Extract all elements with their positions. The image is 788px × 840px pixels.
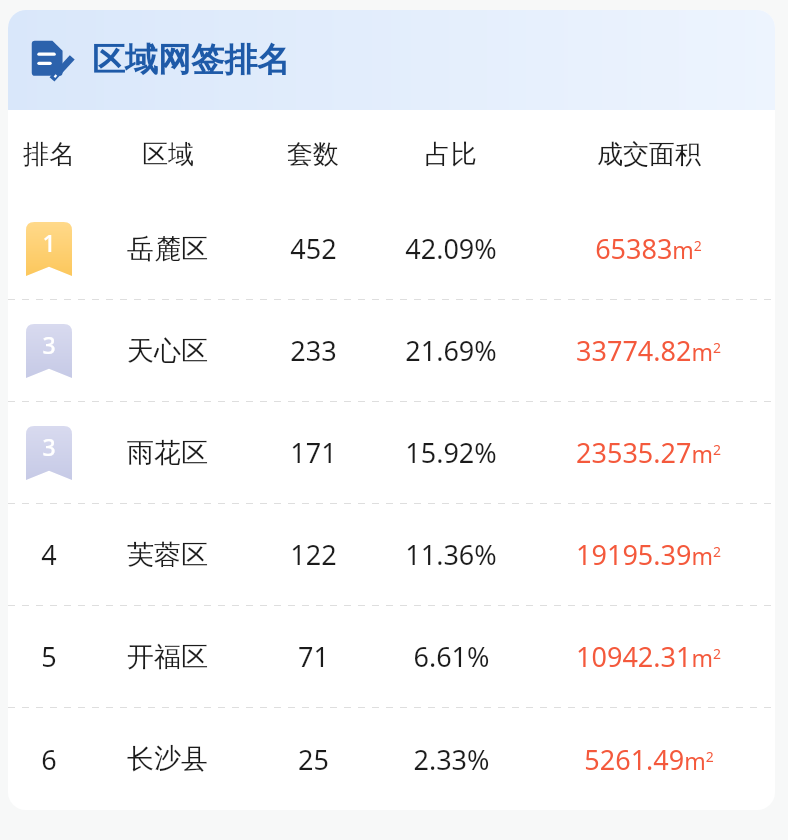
staticText: 5 xyxy=(41,638,57,675)
staticText: 65383m2 xyxy=(595,230,702,267)
staticText: 1 xyxy=(42,227,56,258)
staticText: 天心区 xyxy=(127,334,208,368)
staticText: 占比 xyxy=(425,138,477,171)
staticText: 233 xyxy=(290,332,337,369)
staticText: 3 xyxy=(42,329,56,360)
staticText: 开福区 xyxy=(127,640,208,674)
button[interactable]: 6 xyxy=(8,708,775,810)
button[interactable]: 4 xyxy=(8,504,775,605)
staticText: 6 xyxy=(41,741,57,778)
staticText: 171 xyxy=(290,434,337,471)
staticText: 排名 xyxy=(23,138,75,171)
staticText: 23535.27m2 xyxy=(576,434,721,471)
staticText: 雨花区 xyxy=(127,436,208,470)
staticText: 452 xyxy=(290,230,337,267)
staticText: 4 xyxy=(41,536,57,573)
button[interactable]: 1 xyxy=(8,198,775,299)
staticText: 71 xyxy=(298,638,329,675)
staticText: 11.36% xyxy=(405,536,497,573)
button[interactable]: 3 xyxy=(8,300,775,401)
staticText: 5261.49m2 xyxy=(584,741,714,778)
button[interactable]: 3 xyxy=(8,402,775,503)
staticText: 21.69% xyxy=(405,332,497,369)
staticText: 33774.82m2 xyxy=(576,332,721,369)
staticText: 3 xyxy=(42,431,56,462)
button[interactable]: 区域网签排名图标 xyxy=(8,10,775,110)
staticText: 区域 xyxy=(142,138,194,171)
button[interactable]: 5 xyxy=(8,606,775,707)
other: 区域网签排名图标 xyxy=(30,38,74,82)
staticText: 套数 xyxy=(287,138,339,171)
staticText: 芙蓉区 xyxy=(127,538,208,572)
staticText: 成交面积 xyxy=(597,138,701,171)
staticText: 6.61% xyxy=(413,638,490,675)
staticText: 122 xyxy=(290,536,337,573)
staticText: 42.09% xyxy=(405,230,497,267)
staticText: 岳麓区 xyxy=(127,232,208,266)
staticText: 2.33% xyxy=(413,741,490,778)
staticText: 区域网签排名 xyxy=(92,39,290,81)
staticText: 10942.31m2 xyxy=(576,638,721,675)
staticText: 19195.39m2 xyxy=(576,536,721,573)
staticText: 25 xyxy=(298,741,329,778)
staticText: 长沙县 xyxy=(127,742,208,776)
staticText: 15.92% xyxy=(405,434,497,471)
